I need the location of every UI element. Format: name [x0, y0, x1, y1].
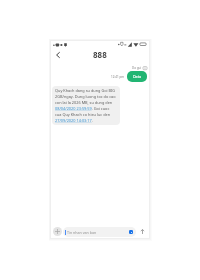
- staticText: Da gui: [132, 66, 142, 70]
- staticText: Tin nhan van ban: [67, 230, 97, 235]
- staticText: Data: [133, 74, 141, 79]
- button[interactable]: Back: [52, 49, 64, 60]
- button[interactable]: Data: [127, 71, 147, 82]
- button[interactable]: Tin nhan van ban: [63, 227, 136, 237]
- staticText: 12:41 pm: [111, 75, 125, 79]
- button[interactable]: Add attachment: [53, 227, 62, 236]
- button[interactable]: Quy Khach dang su dung Goi BIG 2GB/ngay.…: [52, 86, 120, 125]
- staticText: Quy Khach dang su dung Goi BIG 2GB/ngay.…: [55, 88, 116, 123]
- staticText: 888: [93, 49, 107, 60]
- button[interactable]: Send: [138, 227, 147, 236]
